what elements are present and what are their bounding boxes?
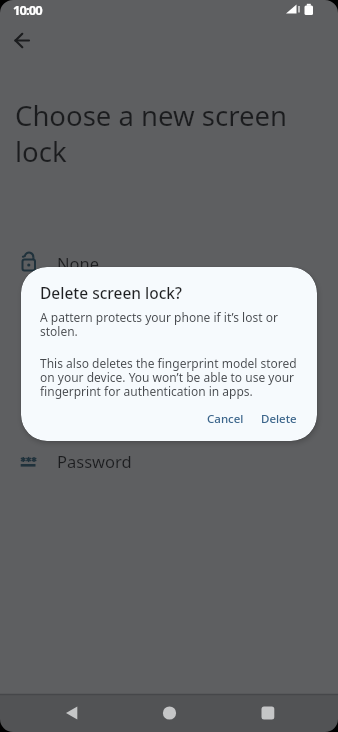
staticText: Password [57,450,132,472]
staticText: This also deletes the fingerprint model … [40,355,297,400]
button[interactable] [48,694,96,732]
button[interactable]: None [0,246,338,282]
staticText: 10:00 [13,1,42,19]
staticText: A pattern protects your phone if it’s lo… [40,309,278,340]
button[interactable]: Cancel [203,409,248,429]
button[interactable] [2,21,42,61]
staticText: None [57,252,100,274]
button[interactable]: Delete [257,409,301,429]
staticText: Delete screen lock? [40,282,182,303]
staticText: Delete [261,411,297,427]
button[interactable] [244,694,292,732]
button[interactable] [145,694,193,732]
staticText: Cancel [207,411,244,427]
staticText: Choose a new screen lock [15,97,287,170]
button[interactable]: Password [0,444,338,480]
